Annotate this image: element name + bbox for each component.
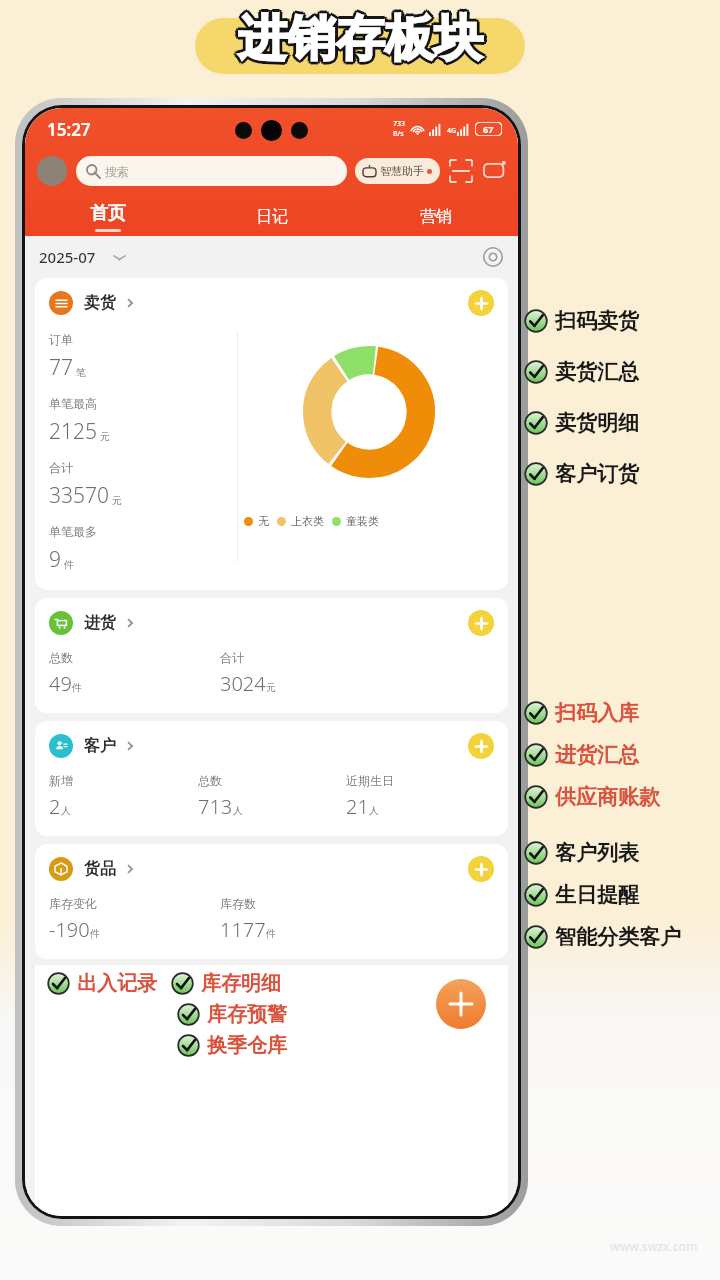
button[interactable]: 换季仓库	[177, 1033, 287, 1058]
staticText: 进销存板块	[241, 8, 486, 70]
staticText: 33570	[49, 481, 109, 510]
staticText: 2025-07	[39, 247, 96, 267]
button[interactable]: Add	[468, 856, 494, 882]
button[interactable]: 库存预警	[177, 1002, 287, 1027]
staticText: 49	[49, 670, 72, 697]
staticText: 件	[72, 681, 82, 694]
staticText: 客户订货	[555, 461, 639, 487]
button[interactable]: 客户列表	[524, 840, 639, 866]
staticText: 供应商账款	[555, 784, 660, 810]
button[interactable]: Scan	[450, 160, 472, 182]
staticText: 智能分类客户	[555, 924, 681, 950]
staticText: 卖货	[84, 293, 116, 313]
staticText: 21	[346, 793, 369, 820]
button[interactable]: 扫码入库	[524, 700, 639, 726]
button[interactable]: 客户	[49, 734, 468, 758]
button[interactable]: Toggle visibility	[482, 246, 504, 268]
staticText: 童装类	[346, 514, 379, 528]
button[interactable]: Add new	[436, 979, 486, 1029]
staticText: 上衣类	[291, 514, 324, 528]
staticText: 9	[49, 545, 61, 574]
button[interactable]: Messages	[484, 160, 506, 182]
button[interactable]: 首页	[25, 198, 190, 236]
staticText: 日记	[256, 207, 288, 227]
staticText: 进销存板块	[238, 8, 483, 70]
staticText: 卖货明细	[555, 410, 639, 436]
button[interactable]: 客户订货	[524, 461, 639, 487]
staticText: 2125	[49, 417, 97, 446]
button[interactable]: 生日提醒	[524, 882, 639, 908]
staticText: 笔	[76, 366, 86, 379]
staticText: 总数	[49, 650, 73, 665]
staticText: 进销存板块	[238, 5, 483, 67]
button[interactable]: 日记	[190, 198, 354, 236]
staticText: 进销存板块	[240, 6, 485, 68]
button[interactable]: 库存明细	[171, 971, 281, 996]
staticText: 新增	[49, 773, 73, 788]
staticText: 元	[112, 494, 122, 507]
staticText: 713	[198, 793, 233, 820]
staticText: B/s	[393, 129, 404, 139]
staticText: 换季仓库	[207, 1033, 287, 1058]
staticText: 人	[369, 804, 379, 817]
staticText: 733	[393, 119, 406, 129]
button[interactable]: 智能分类客户	[524, 924, 681, 950]
staticText: 库存变化	[49, 896, 97, 911]
button[interactable]: 进货	[49, 611, 468, 635]
staticText: 库存预警	[207, 1002, 287, 1027]
button[interactable]: Profile	[37, 156, 67, 186]
staticText: 扫码卖货	[555, 308, 639, 334]
button[interactable]: 营销	[354, 198, 518, 236]
button[interactable]: Add	[468, 733, 494, 759]
staticText: 单笔最高	[49, 396, 97, 411]
staticText: 出入记录	[77, 971, 157, 996]
staticText: 元	[100, 430, 110, 443]
staticText: 货品	[84, 859, 116, 879]
button[interactable]: 卖货	[49, 291, 468, 315]
staticText: 单笔最多	[49, 524, 97, 539]
button[interactable]: 智慧助手	[355, 158, 440, 184]
button[interactable]: 扫码卖货	[524, 308, 639, 334]
button[interactable]: 出入记录	[47, 971, 157, 996]
staticText: 合计	[49, 460, 73, 475]
staticText: 订单	[49, 332, 73, 347]
staticText: 进销存板块	[236, 10, 481, 72]
staticText: 77	[49, 353, 73, 382]
staticText: 进销存板块	[235, 8, 480, 70]
button[interactable]: 进货汇总	[524, 742, 639, 768]
staticText: 1177	[220, 916, 266, 943]
button[interactable]: 卖货明细	[524, 410, 639, 436]
staticText: 生日提醒	[555, 882, 639, 908]
staticText: 首页	[90, 202, 126, 225]
button[interactable]: 供应商账款	[524, 784, 660, 810]
staticText: 库存数	[220, 896, 256, 911]
staticText: -190	[49, 916, 90, 943]
staticText: 进货汇总	[555, 742, 639, 768]
staticText: 客户列表	[555, 840, 639, 866]
button[interactable]: 搜索	[76, 156, 347, 186]
staticText: 67	[483, 123, 494, 135]
staticText: 卖货汇总	[555, 359, 639, 385]
staticText: 总数	[198, 773, 222, 788]
button[interactable]: 货品	[49, 857, 468, 881]
staticText: www.swzx.com	[610, 1238, 698, 1254]
button[interactable]: 卖货汇总	[524, 359, 639, 385]
staticText: 件	[266, 927, 276, 940]
staticText: 库存明细	[201, 971, 281, 996]
staticText: 搜索	[105, 164, 129, 179]
staticText: 进销存板块	[240, 10, 485, 72]
staticText: 智慧助手	[380, 164, 424, 178]
staticText: 元	[266, 681, 276, 694]
staticText: 2	[49, 793, 61, 820]
staticText: 进销存板块	[236, 6, 481, 68]
staticText: 营销	[420, 207, 452, 227]
staticText: 进销存板块	[238, 11, 483, 73]
staticText: 无	[258, 514, 269, 528]
staticText: 15:27	[47, 118, 91, 141]
staticText: 扫码入库	[555, 700, 639, 726]
button[interactable]: Add	[468, 610, 494, 636]
staticText: 人	[61, 804, 71, 817]
button[interactable]: 2025-07	[39, 247, 125, 267]
staticText: 4G	[447, 126, 457, 136]
button[interactable]: Add	[468, 290, 494, 316]
